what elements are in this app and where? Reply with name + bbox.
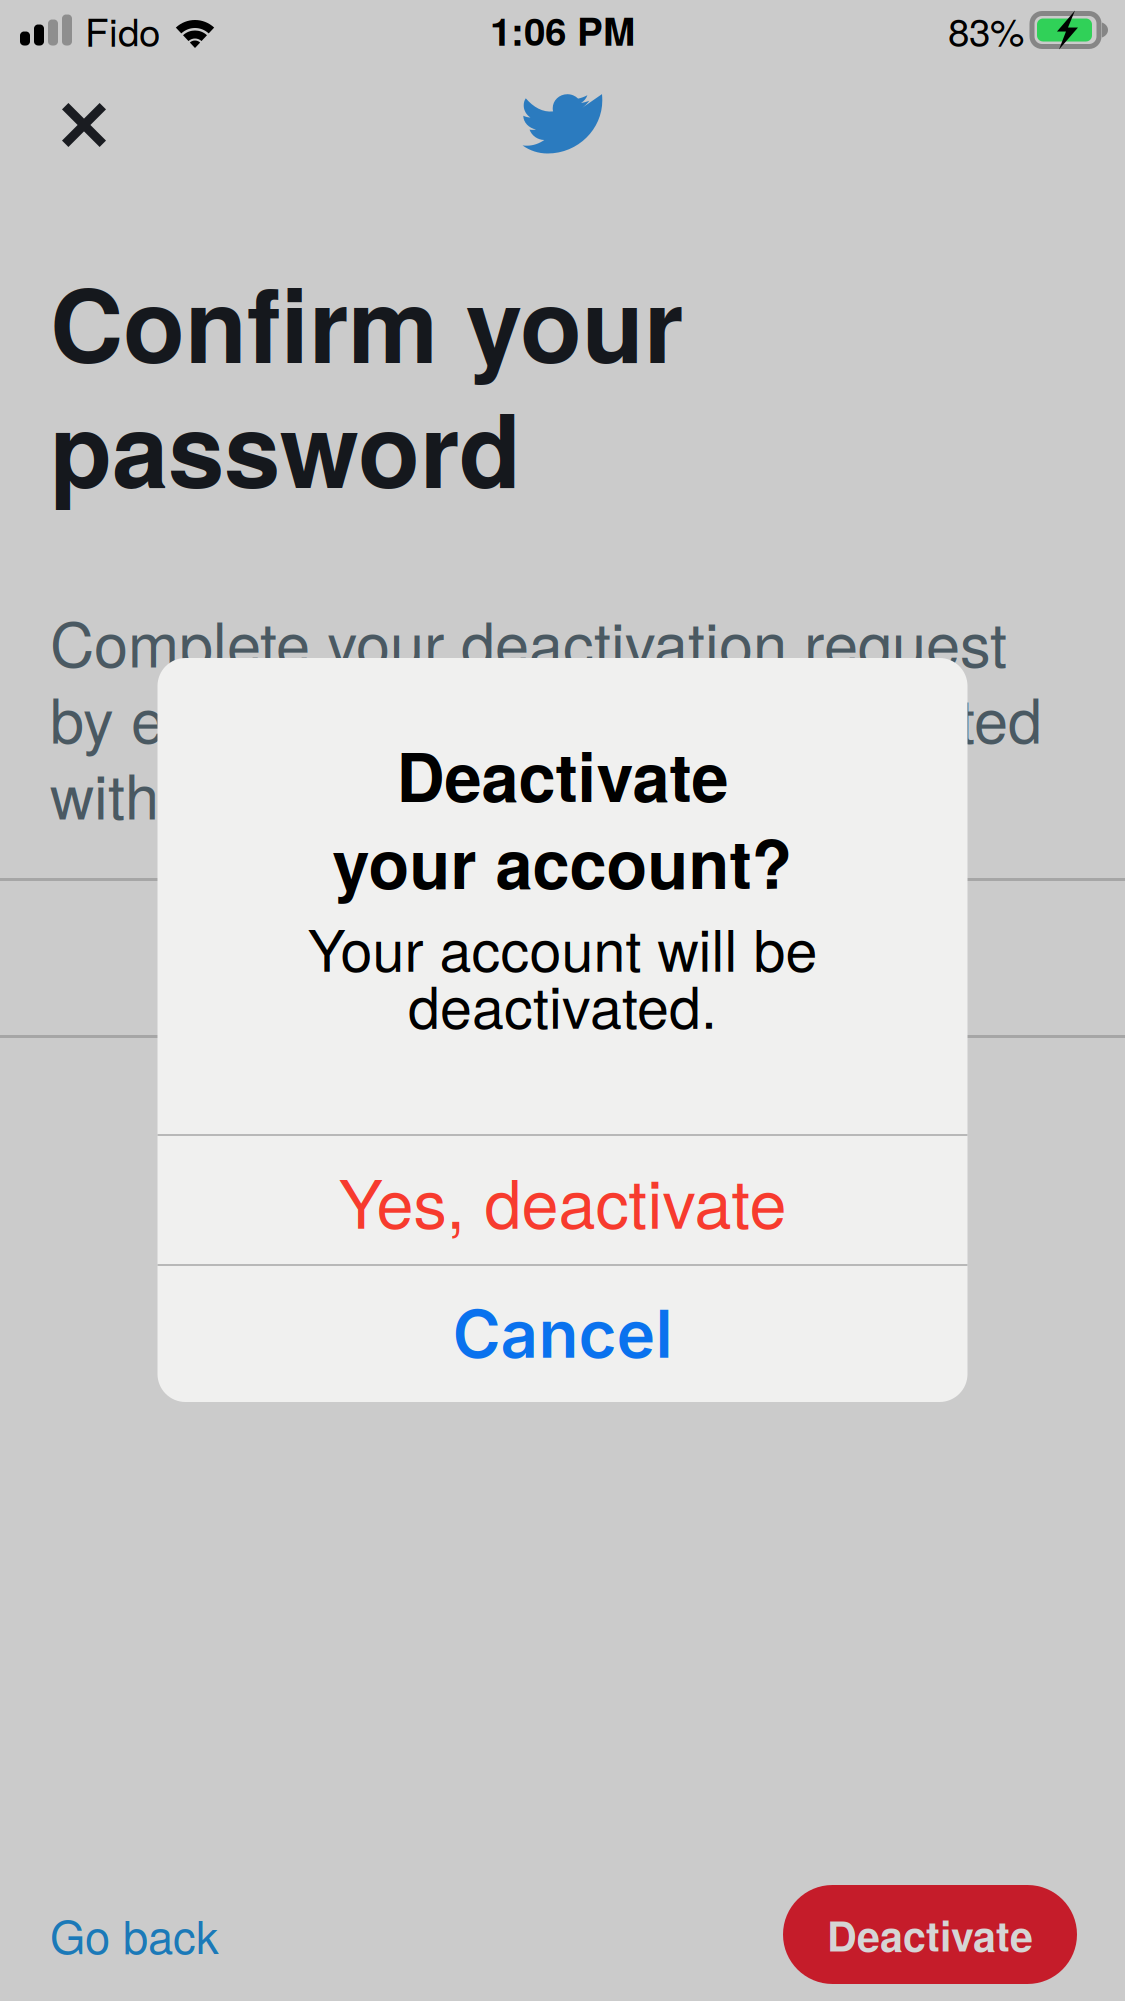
button[interactable]: Go back: [50, 1885, 246, 1984]
staticText: Go back: [50, 1902, 219, 1967]
staticText: Deactivate: [827, 1905, 1033, 1964]
staticText: Yes, deactivate: [338, 1152, 786, 1248]
staticText: Deactivate: [396, 727, 728, 822]
staticText: Complete your deactivation request: [50, 597, 1007, 685]
staticText: your account?: [332, 814, 792, 909]
staticText: Confirm your: [50, 249, 683, 394]
staticText: with this account.: [50, 749, 521, 837]
button[interactable]: Cancel: [157, 1266, 967, 1402]
staticText: Your account will be: [307, 906, 817, 988]
staticText: password: [50, 374, 521, 519]
staticText: Cancel: [452, 1294, 672, 1373]
staticText: by entering the password associated: [50, 673, 1042, 761]
staticText: 83%: [948, 2, 1024, 58]
staticText: 1:06 PM: [490, 2, 635, 58]
button[interactable]: Close: [38, 79, 130, 171]
staticText: deactivated.: [408, 963, 717, 1045]
staticText: Fido: [85, 2, 160, 58]
button[interactable]: Deactivate: [783, 1885, 1077, 1984]
button[interactable]: Yes, deactivate: [157, 1136, 967, 1264]
